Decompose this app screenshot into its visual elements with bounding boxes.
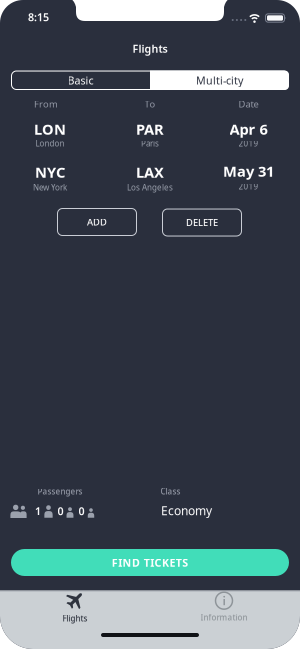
button[interactable]: Multi-city [150,70,289,90]
staticText: Flights [62,613,87,624]
staticText: LAX [136,162,164,182]
staticText: Date [238,98,258,110]
button[interactable]: Information [164,585,284,629]
staticText: Los Angeles [127,182,173,193]
staticText: Paris [141,138,159,149]
staticText: 1 [35,504,41,518]
staticText: New York [33,182,67,193]
staticText: ADD [87,216,107,228]
button[interactable]: ADD [57,208,137,236]
button[interactable]: Basic [11,70,150,90]
staticText: To [144,98,155,110]
staticText: 8:15 [28,10,49,24]
staticText: May 31 [223,161,274,181]
staticText: Economy [161,502,212,518]
staticText: Apr 6 [229,119,267,139]
staticText: Class [160,486,180,497]
staticText: DELETE [186,216,218,229]
staticText: NYC [35,162,65,182]
staticText: London [35,138,64,149]
staticText: Flights [132,41,167,56]
staticText: 0 [57,504,63,518]
staticText: Passengers [37,486,82,497]
staticText: LON [34,119,66,139]
staticText: 2019 [238,181,258,192]
button[interactable]: Flights [15,585,135,629]
staticText: Basic [67,73,93,87]
staticText: Multi-city [196,73,243,87]
button[interactable]: DELETE [162,208,242,236]
button[interactable]: FIND TICKETS [11,549,289,576]
staticText: 2019 [238,138,258,149]
staticText: FIND TICKETS [112,555,188,570]
staticText: 0 [78,504,84,518]
staticText: From [34,98,58,110]
staticText: PAR [136,119,164,139]
staticText: Information [200,612,247,623]
